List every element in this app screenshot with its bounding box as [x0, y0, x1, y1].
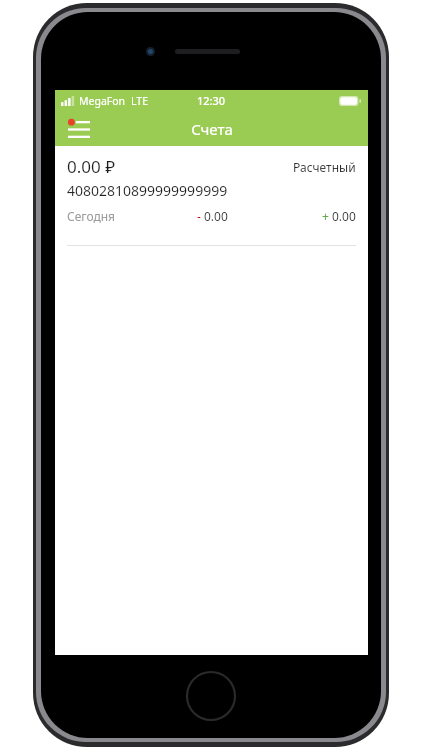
- staticText: LTE: [131, 94, 148, 108]
- staticText: -: [197, 208, 204, 224]
- staticText: 40802810899999999999: [67, 181, 228, 200]
- button[interactable]: 0.00 ₽: [55, 146, 368, 246]
- staticText: +: [322, 208, 332, 224]
- staticText: 0.00: [332, 208, 356, 224]
- staticText: Счета: [191, 119, 233, 139]
- staticText: Сегодня: [67, 208, 164, 224]
- staticText: 0.00 ₽: [67, 155, 116, 178]
- staticText: 0.00: [204, 208, 228, 224]
- staticText: Расчетный: [293, 159, 356, 175]
- staticText: 12:30: [197, 93, 226, 108]
- staticText: MegaFon: [79, 94, 126, 108]
- button[interactable]: Menu: [63, 114, 95, 144]
